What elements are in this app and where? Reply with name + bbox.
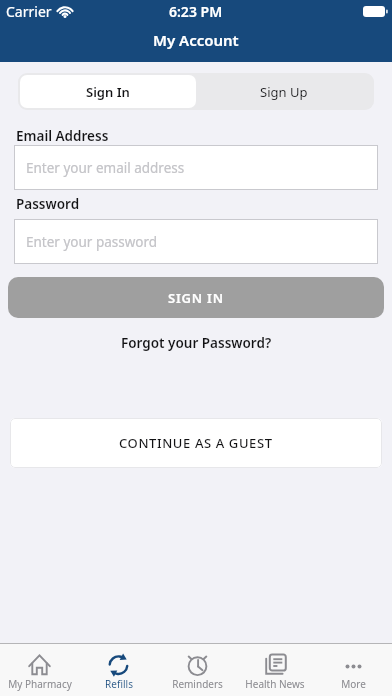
button[interactable]: Forgot your Password? bbox=[121, 334, 272, 352]
button[interactable]: My Pharmacy bbox=[0, 644, 79, 696]
button[interactable]: SIGN IN bbox=[8, 277, 384, 318]
button[interactable]: Refills bbox=[79, 644, 158, 696]
button[interactable]: Sign Up bbox=[196, 75, 372, 108]
staticText: My Pharmacy bbox=[8, 677, 72, 691]
button[interactable]: Reminders bbox=[158, 644, 236, 696]
button[interactable]: Enter your password bbox=[14, 219, 378, 264]
staticText: Carrier bbox=[6, 2, 52, 21]
staticText: Sign Up bbox=[260, 83, 308, 101]
staticText: CONTINUE AS A GUEST bbox=[119, 434, 273, 452]
staticText: Enter your password bbox=[26, 233, 158, 251]
staticText: Reminders bbox=[172, 677, 223, 691]
staticText: Password bbox=[16, 195, 80, 213]
staticText: Refills bbox=[105, 677, 133, 691]
button[interactable]: Enter your email address bbox=[14, 145, 378, 190]
button[interactable]: More bbox=[314, 644, 392, 696]
staticText: My Account bbox=[153, 30, 239, 50]
staticText: Enter your email address bbox=[26, 159, 185, 177]
staticText: Email Address bbox=[16, 127, 109, 145]
staticText: 6:23 PM bbox=[169, 2, 223, 21]
staticText: Health News bbox=[245, 677, 305, 691]
button[interactable]: CONTINUE AS A GUEST bbox=[10, 418, 382, 468]
staticText: More bbox=[341, 677, 366, 691]
button[interactable]: Health News bbox=[236, 644, 314, 696]
button[interactable]: Sign In bbox=[20, 75, 196, 108]
staticText: Sign In bbox=[86, 83, 130, 101]
staticText: SIGN IN bbox=[168, 289, 224, 307]
